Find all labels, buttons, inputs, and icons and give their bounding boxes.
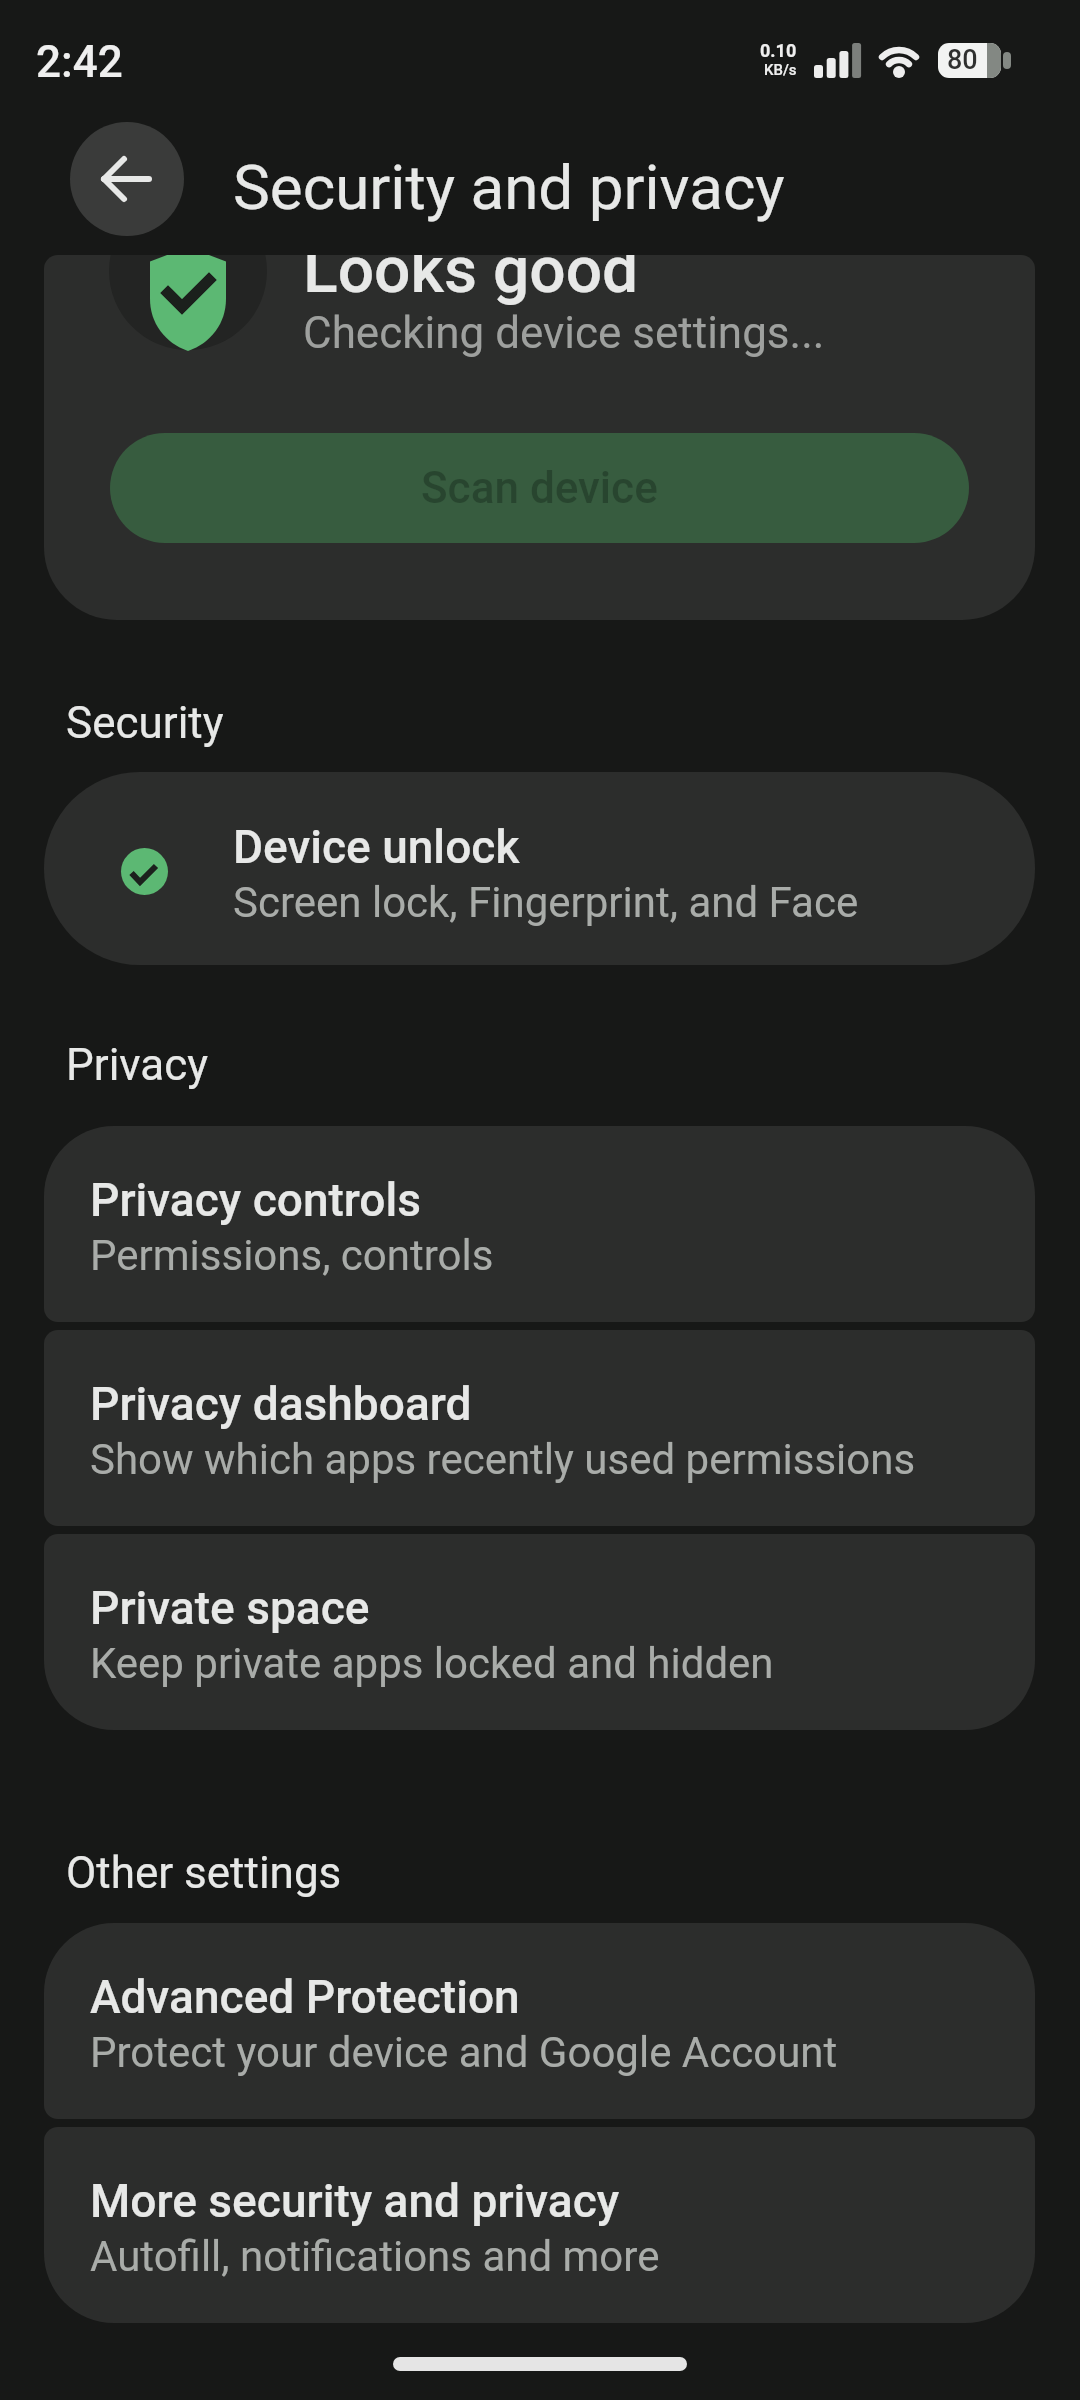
staticText: Privacy controls <box>90 1173 421 1227</box>
staticText: 2:42 <box>36 36 123 88</box>
button[interactable] <box>70 122 184 236</box>
staticText: Checking device settings... <box>303 307 825 359</box>
staticText: Security <box>66 697 224 749</box>
staticText: 80 <box>947 44 978 76</box>
staticText: Looks good <box>303 255 639 308</box>
button[interactable]: Advanced Protection <box>44 1923 1035 2119</box>
staticText: Other settings <box>66 1847 342 1899</box>
button[interactable]: Device unlock <box>44 772 1035 965</box>
staticText: KB/s <box>764 61 797 79</box>
staticText: Keep private apps locked and hidden <box>90 1639 774 1688</box>
staticText: Show which apps recently used permission… <box>90 1435 916 1484</box>
staticText: More security and privacy <box>90 2174 620 2228</box>
staticText: Permissions, controls <box>90 1231 494 1280</box>
staticText: 0.10 <box>760 40 797 61</box>
staticText: Scan device <box>421 462 658 514</box>
button[interactable]: Privacy dashboard <box>44 1330 1035 1526</box>
button[interactable]: Privacy controls <box>44 1126 1035 1322</box>
staticText: Privacy dashboard <box>90 1377 472 1431</box>
staticText: Security and privacy <box>233 151 785 224</box>
button[interactable]: More security and privacy <box>44 2127 1035 2323</box>
staticText: Autofill, notifications and more <box>90 2232 660 2281</box>
staticText: Screen lock, Fingerprint, and Face <box>233 878 859 927</box>
staticText: Advanced Protection <box>90 1970 520 2024</box>
staticText: Protect your device and Google Account <box>90 2028 838 2077</box>
staticText: Privacy <box>66 1039 209 1091</box>
staticText: Private space <box>90 1581 370 1635</box>
button[interactable]: Private space <box>44 1534 1035 1730</box>
staticText: Device unlock <box>233 820 520 874</box>
button[interactable]: Scan device <box>110 433 969 543</box>
